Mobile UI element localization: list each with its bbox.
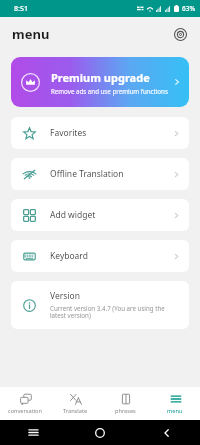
button[interactable]: menu — [150, 387, 200, 420]
staticText: Current version 3.4.7 (You are using the… — [50, 304, 178, 320]
button[interactable]: Translate — [50, 387, 100, 420]
button[interactable]: Version — [11, 281, 189, 329]
staticText: conversation — [8, 407, 42, 415]
button[interactable]: Favorites — [11, 117, 189, 149]
staticText: menu — [12, 25, 50, 43]
button[interactable]: phrases — [100, 387, 150, 420]
staticText: Version — [50, 290, 80, 302]
staticText: Remove ads and use premium functions — [51, 87, 168, 95]
staticText: Add widget — [50, 209, 96, 221]
staticText: 8:51 — [14, 4, 28, 14]
button[interactable]: Premium upgrade — [11, 57, 189, 107]
button[interactable]: conversation — [0, 387, 50, 420]
button[interactable]: Add widget — [11, 199, 189, 231]
staticText: menu — [167, 407, 183, 415]
button[interactable]: Settings — [169, 23, 191, 45]
staticText: Premium upgrade — [51, 70, 150, 85]
button[interactable]: Offline Translation — [11, 158, 189, 190]
staticText: Favorites — [50, 127, 87, 139]
button[interactable]: Keyboard — [11, 240, 189, 272]
staticText: Translate — [63, 407, 88, 415]
staticText: 63% — [182, 4, 195, 13]
staticText: Offline Translation — [50, 168, 124, 180]
staticText: phrases — [115, 407, 136, 415]
staticText: Keyboard — [50, 250, 88, 262]
